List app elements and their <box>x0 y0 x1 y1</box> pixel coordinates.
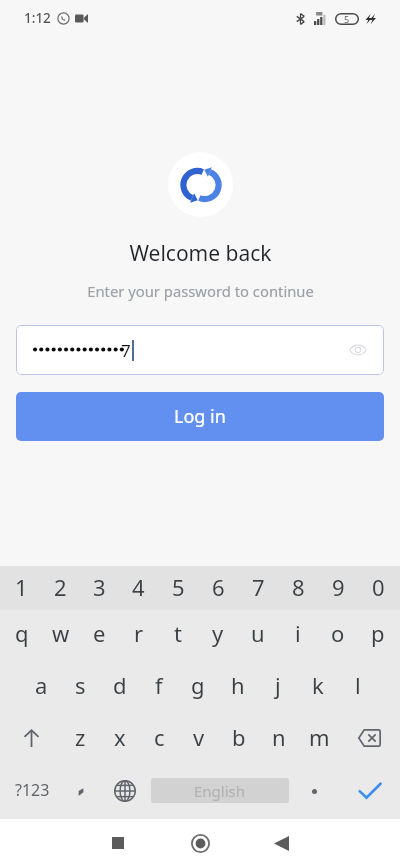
staticText: 0 <box>372 572 385 602</box>
staticText: English <box>194 781 246 801</box>
button[interactable]: z <box>61 714 100 766</box>
staticText: s <box>75 670 86 700</box>
staticText: h <box>231 670 245 700</box>
button[interactable]: 6 <box>198 566 238 610</box>
staticText: g <box>191 670 205 700</box>
button[interactable]: y <box>198 610 238 662</box>
staticText: o <box>331 618 345 648</box>
staticText: i <box>295 618 301 648</box>
staticText: d <box>113 670 127 700</box>
button[interactable]: o <box>318 610 358 662</box>
staticText: 1 <box>15 572 28 602</box>
staticText: n <box>272 722 286 752</box>
button[interactable]: i <box>278 610 318 662</box>
button[interactable]: d <box>100 662 139 714</box>
button[interactable]: m <box>299 714 339 766</box>
button[interactable]: 4 <box>119 566 158 610</box>
staticText: q <box>15 618 29 648</box>
button[interactable]: 9 <box>318 566 358 610</box>
button[interactable]: u <box>238 610 278 662</box>
button[interactable]: 7 <box>238 566 278 610</box>
button[interactable]: s <box>61 662 100 714</box>
button[interactable]: j <box>258 662 298 714</box>
button[interactable]: 1 <box>2 566 41 610</box>
button[interactable]: v <box>179 714 219 766</box>
button[interactable]: e <box>80 610 119 662</box>
button[interactable]: Shift <box>2 714 61 766</box>
button[interactable]: Backspace <box>339 714 398 766</box>
button[interactable]: 3 <box>80 566 119 610</box>
button[interactable]: f <box>139 662 178 714</box>
button[interactable]: 0 <box>358 566 398 610</box>
staticText: 5 <box>344 13 350 25</box>
staticText: m <box>309 722 330 752</box>
staticText: Welcome back <box>129 239 272 268</box>
staticText: p <box>371 618 385 648</box>
staticText: w <box>52 618 70 648</box>
staticText: 8 <box>292 572 305 602</box>
button[interactable]: x <box>100 714 139 766</box>
staticText: y <box>212 618 224 648</box>
staticText: v <box>193 722 205 752</box>
staticText: Log in <box>174 404 226 429</box>
button[interactable]: k <box>298 662 338 714</box>
button[interactable]: 7 <box>16 325 384 375</box>
staticText: t <box>174 618 182 648</box>
button[interactable] <box>64 766 98 819</box>
button[interactable]: q <box>2 610 41 662</box>
staticText: z <box>75 722 86 752</box>
staticText: x <box>114 722 126 752</box>
staticText: j <box>275 670 281 700</box>
button[interactable]: p <box>358 610 398 662</box>
staticText: a <box>35 670 48 700</box>
button[interactable]: Log in <box>16 392 384 441</box>
button[interactable]: Recent apps <box>76 819 159 867</box>
button[interactable]: 2 <box>41 566 80 610</box>
staticText: ?123 <box>15 779 50 801</box>
button[interactable]: b <box>219 714 259 766</box>
staticText: 4 <box>132 572 145 602</box>
button[interactable]: h <box>218 662 258 714</box>
button[interactable]: 8 <box>278 566 318 610</box>
staticText: 1:12 <box>24 9 51 27</box>
staticText: 2 <box>54 572 67 602</box>
button[interactable]: Show password <box>346 338 370 362</box>
button[interactable]: English <box>151 778 289 803</box>
button[interactable]: g <box>178 662 218 714</box>
staticText: f <box>155 670 163 700</box>
button[interactable]: n <box>259 714 299 766</box>
staticText: 3 <box>93 572 106 602</box>
staticText: u <box>251 618 265 648</box>
button[interactable]: l <box>338 662 378 714</box>
staticText: b <box>232 722 246 752</box>
button[interactable]: Change language <box>98 766 151 819</box>
staticText: 9 <box>332 572 345 602</box>
button[interactable]: a <box>22 662 61 714</box>
staticText: 6 <box>212 572 225 602</box>
button[interactable]: Done <box>340 766 400 819</box>
staticText: k <box>312 670 324 700</box>
staticText: c <box>154 722 165 752</box>
staticText: Enter your password to continue <box>87 281 314 301</box>
button[interactable]: t <box>158 610 198 662</box>
button[interactable]: 5 <box>158 566 198 610</box>
button[interactable]: ?123 <box>0 766 64 819</box>
button[interactable]: Home <box>159 819 242 867</box>
button[interactable] <box>289 766 340 819</box>
button[interactable]: Back <box>242 819 325 867</box>
staticText: l <box>355 670 361 700</box>
button[interactable]: w <box>41 610 80 662</box>
staticText: e <box>93 618 106 648</box>
staticText: r <box>134 618 144 648</box>
staticText: 7 <box>121 339 131 362</box>
button[interactable]: r <box>119 610 158 662</box>
button[interactable]: c <box>139 714 179 766</box>
staticText: 7 <box>252 572 265 602</box>
staticText: 5 <box>172 572 185 602</box>
